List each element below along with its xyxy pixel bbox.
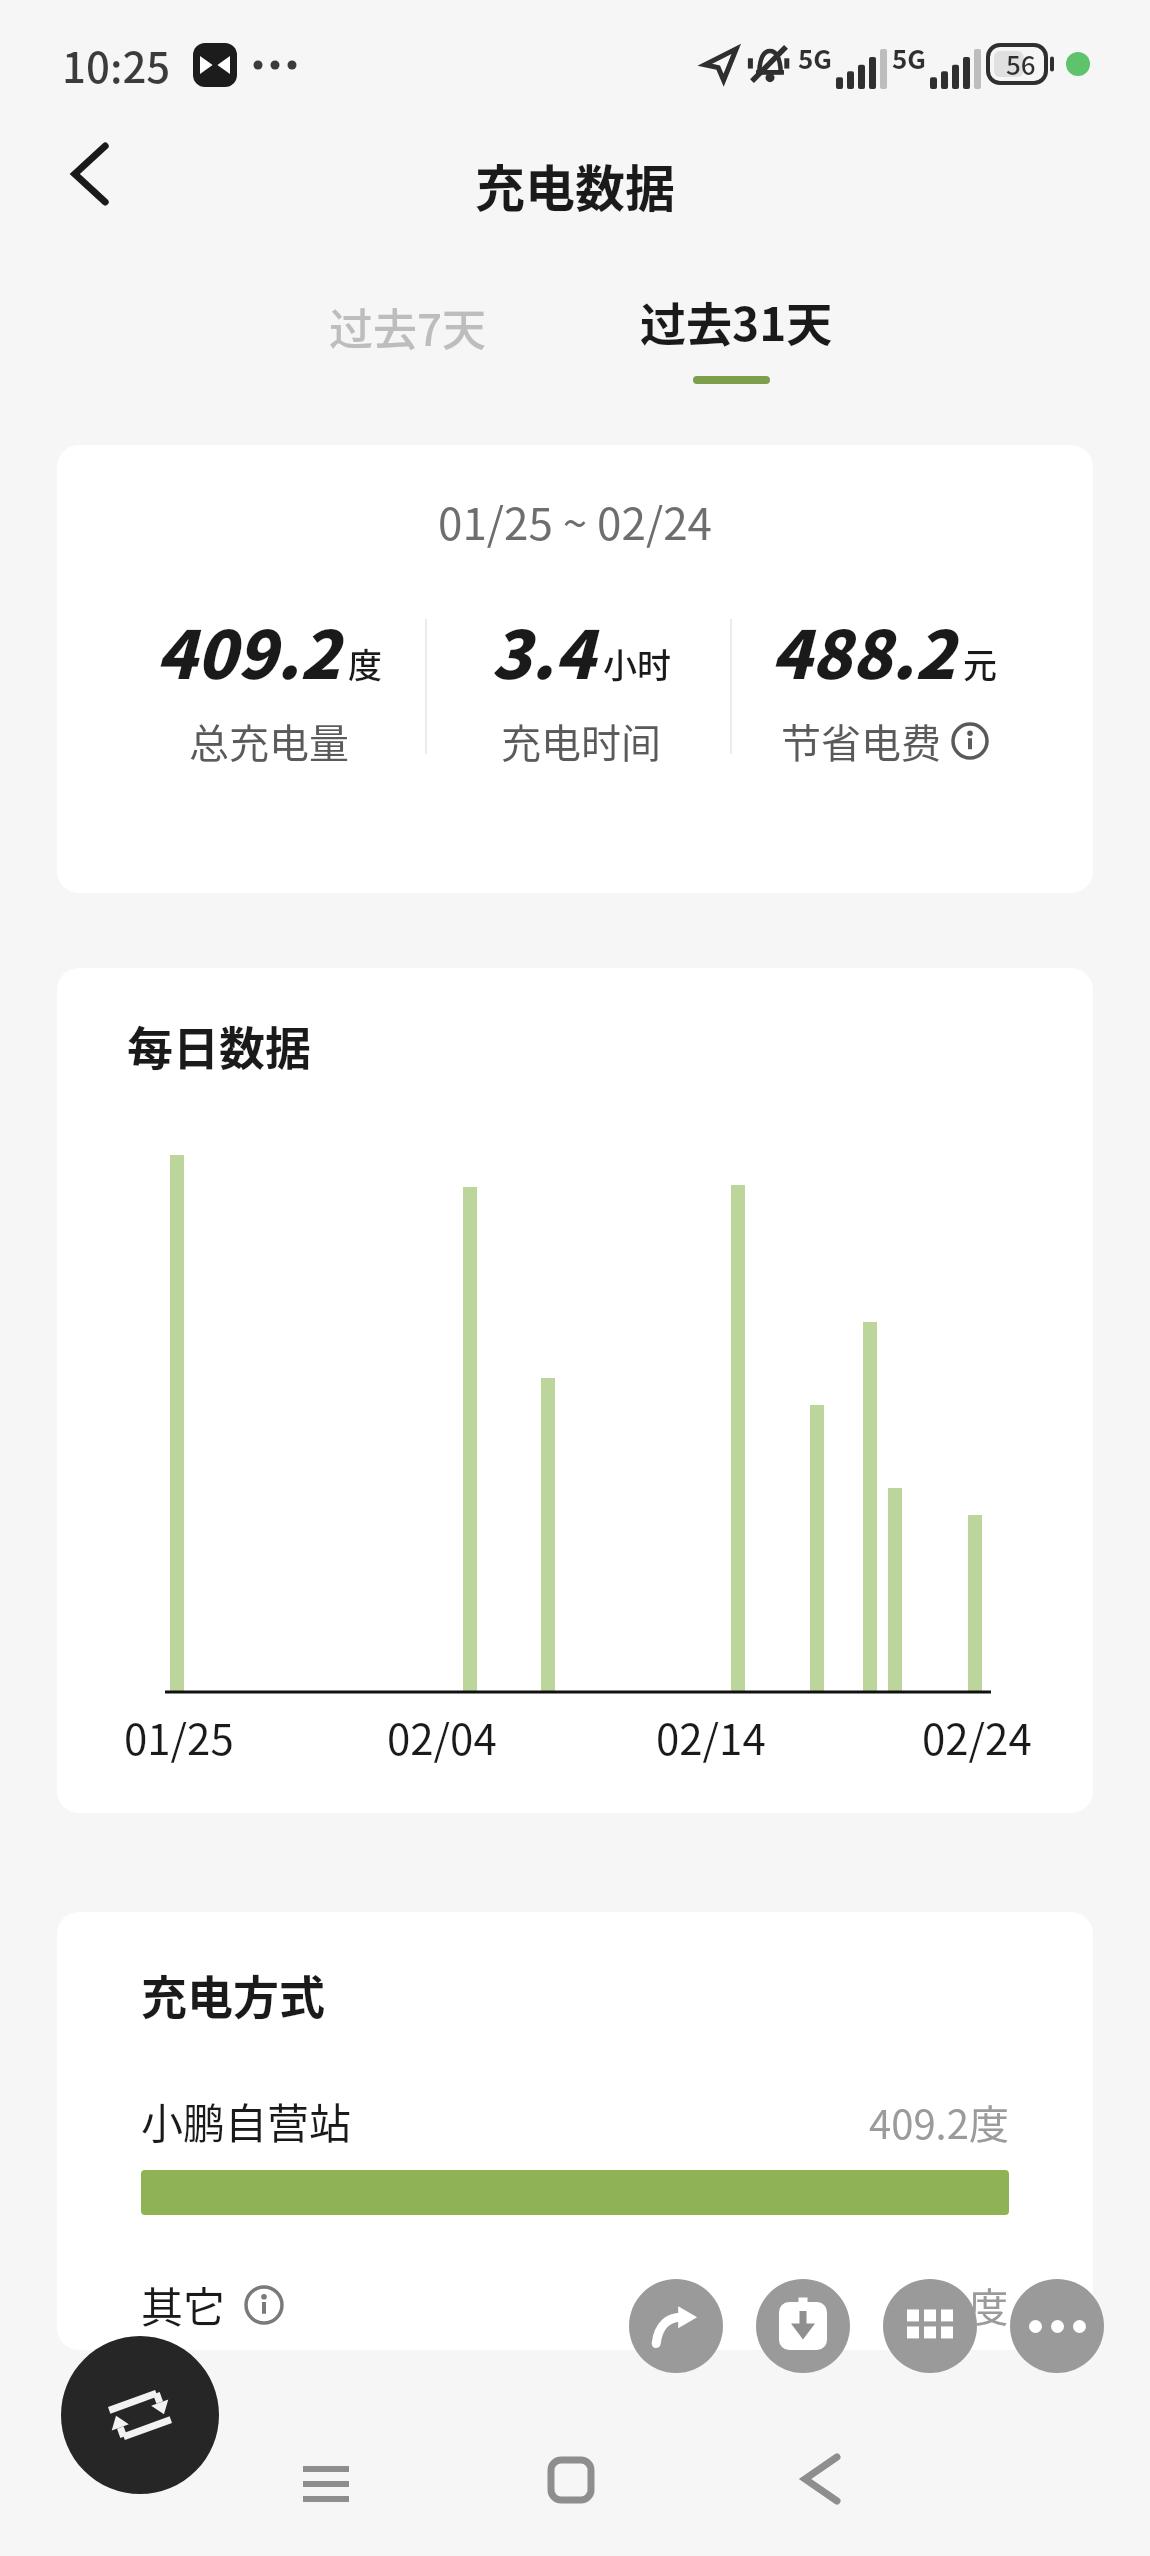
staticText: 5G <box>798 39 832 77</box>
button[interactable] <box>288 2446 364 2522</box>
button[interactable] <box>756 2279 850 2373</box>
staticText: 3.4 <box>491 602 595 698</box>
staticText: 409.2度 <box>869 2093 1009 2151</box>
staticText: 409.2 <box>156 602 340 698</box>
staticText: 02/24 <box>922 1706 1032 1767</box>
staticText: 其它 <box>141 2274 226 2335</box>
staticText: 488.2 <box>771 602 955 698</box>
staticText: 元 <box>963 639 997 688</box>
staticText: 充电时间 <box>501 712 661 770</box>
button[interactable] <box>56 140 124 208</box>
staticText: 0度 <box>946 2276 1009 2334</box>
staticText: 过去7天 <box>329 295 487 359</box>
staticText: 过去31天 <box>640 288 833 355</box>
staticText: 01/25 <box>124 1706 234 1767</box>
staticText: 节省电费 <box>781 712 941 770</box>
staticText: 01/25 ~ 02/24 <box>438 489 712 553</box>
button[interactable] <box>61 2336 219 2494</box>
button[interactable] <box>785 2444 855 2514</box>
button[interactable] <box>883 2279 977 2373</box>
staticText: 总充电量 <box>189 712 349 770</box>
button[interactable] <box>629 2279 723 2373</box>
staticText: 小时 <box>603 639 671 688</box>
staticText: 每日数据 <box>127 1012 311 1079</box>
button[interactable]: 过去7天 <box>300 279 500 369</box>
staticText: 10:25 <box>62 34 171 95</box>
button[interactable] <box>1010 2279 1104 2373</box>
button[interactable] <box>533 2442 609 2518</box>
staticText: 5G <box>892 39 926 77</box>
staticText: 充电方式 <box>141 1961 325 2028</box>
staticText: 度 <box>348 639 382 688</box>
staticText: 02/04 <box>387 1706 497 1767</box>
staticText: 小鹏自营站 <box>141 2090 352 2151</box>
staticText: 充电数据 <box>475 149 675 221</box>
staticText: 02/14 <box>656 1706 766 1767</box>
button[interactable]: 过去31天 <box>620 272 850 397</box>
staticText: 56 <box>1006 45 1036 83</box>
